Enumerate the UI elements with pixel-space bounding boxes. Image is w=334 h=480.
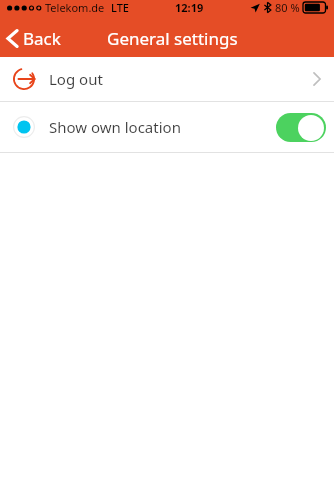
staticText: Show own location xyxy=(49,117,181,137)
button[interactable]: Log out xyxy=(0,57,334,101)
staticText: LTE xyxy=(111,0,129,15)
button[interactable]: Show own location xyxy=(0,102,334,152)
button[interactable]: Back xyxy=(0,23,71,54)
button[interactable]: Show own location toggle xyxy=(276,113,326,142)
staticText: General settings xyxy=(107,27,238,50)
staticText: Telekom.de xyxy=(45,0,105,15)
staticText: 12:19 xyxy=(175,0,204,15)
staticText: Back xyxy=(23,27,61,50)
staticText: Log out xyxy=(49,69,103,89)
staticText: 80 % xyxy=(275,0,300,15)
